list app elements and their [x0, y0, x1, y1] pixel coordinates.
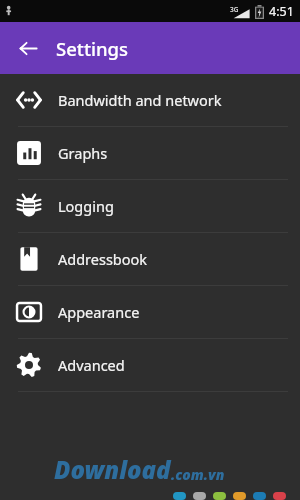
staticText: Advanced — [58, 355, 125, 375]
button[interactable]: Addressbook — [0, 233, 300, 285]
button[interactable]: Logging — [0, 180, 300, 232]
staticText: Graphs — [58, 143, 108, 163]
staticText: Download — [54, 453, 171, 486]
staticText: Bandwidth and network — [58, 90, 222, 110]
staticText: .com.vn — [171, 465, 225, 484]
button[interactable]: Advanced — [0, 339, 300, 391]
staticText: 4:51 — [269, 3, 294, 20]
button[interactable]: Appearance — [0, 286, 300, 338]
button[interactable]: Graphs — [0, 127, 300, 179]
staticText: 3G — [230, 5, 239, 14]
staticText: Logging — [58, 196, 114, 216]
staticText: Appearance — [58, 302, 140, 322]
staticText: Settings — [56, 36, 129, 61]
button[interactable]: Bandwidth and network — [0, 74, 300, 126]
button[interactable]: Back — [10, 30, 46, 66]
staticText: Addressbook — [58, 249, 148, 269]
